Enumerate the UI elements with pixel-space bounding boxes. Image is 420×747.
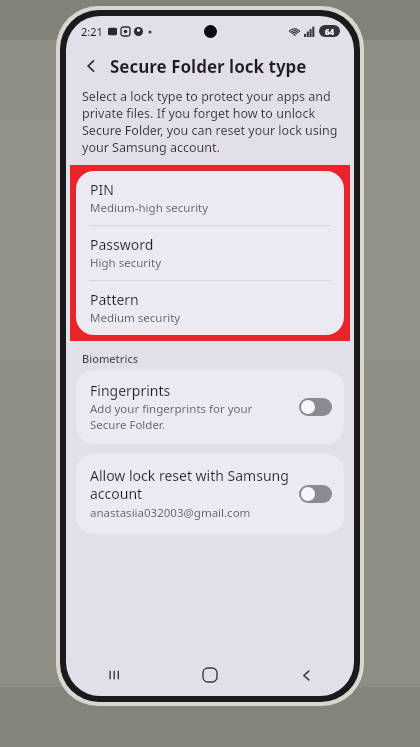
staticText: Secure Folder lock type xyxy=(110,55,307,78)
staticText: Biometrics xyxy=(82,351,139,366)
staticText: Fingerprints xyxy=(90,381,171,400)
staticText: Select a lock type to protect your apps … xyxy=(82,88,340,156)
staticText: PIN xyxy=(90,180,114,199)
button[interactable]: Toggle xyxy=(299,398,332,416)
staticText: 2:21 xyxy=(81,24,103,39)
staticText: Password xyxy=(90,235,154,254)
button[interactable]: Back xyxy=(258,654,354,696)
staticText: Add your fingerprints for your Secure Fo… xyxy=(90,401,291,432)
button[interactable]: Home xyxy=(162,654,258,696)
button[interactable]: Back xyxy=(78,53,104,79)
button[interactable]: Fingerprints xyxy=(76,370,344,444)
staticText: Medium-high security xyxy=(90,200,209,216)
button[interactable]: Allow lock reset with Samsung account xyxy=(76,454,344,534)
button[interactable]: Pattern xyxy=(76,281,344,335)
staticText: 64 xyxy=(325,26,335,37)
staticText: Medium security xyxy=(90,310,181,326)
staticText: High security xyxy=(90,255,162,271)
button[interactable]: Recents xyxy=(66,654,162,696)
button[interactable]: Toggle xyxy=(299,485,332,503)
button[interactable]: Password xyxy=(76,226,344,280)
button[interactable]: PIN xyxy=(76,171,344,225)
staticText: Pattern xyxy=(90,290,139,309)
staticText: anastasiia032003@gmail.com xyxy=(90,505,251,521)
staticText: Allow lock reset with Samsung account xyxy=(90,466,291,503)
